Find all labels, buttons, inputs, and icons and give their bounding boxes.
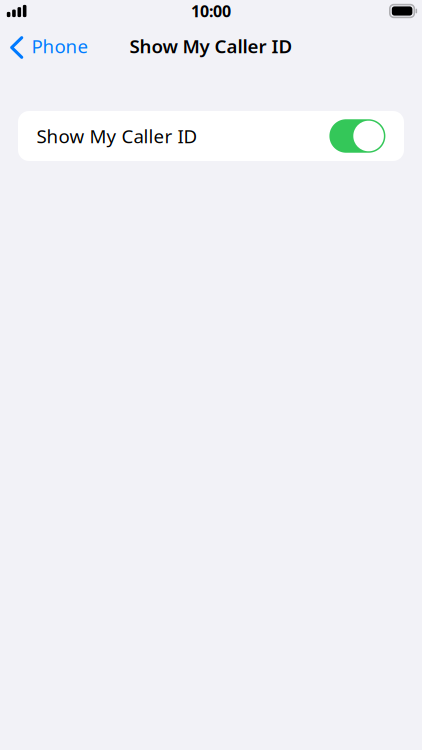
staticText: 10:00 — [191, 0, 231, 22]
staticText: Phone — [31, 34, 88, 58]
staticText: Show My Caller ID — [129, 34, 292, 58]
button[interactable]: Back to Phone — [0, 29, 96, 63]
button[interactable]: Show My Caller ID — [329, 119, 385, 153]
button[interactable]: Show My Caller ID — [18, 111, 404, 161]
staticText: Show My Caller ID — [36, 124, 197, 148]
